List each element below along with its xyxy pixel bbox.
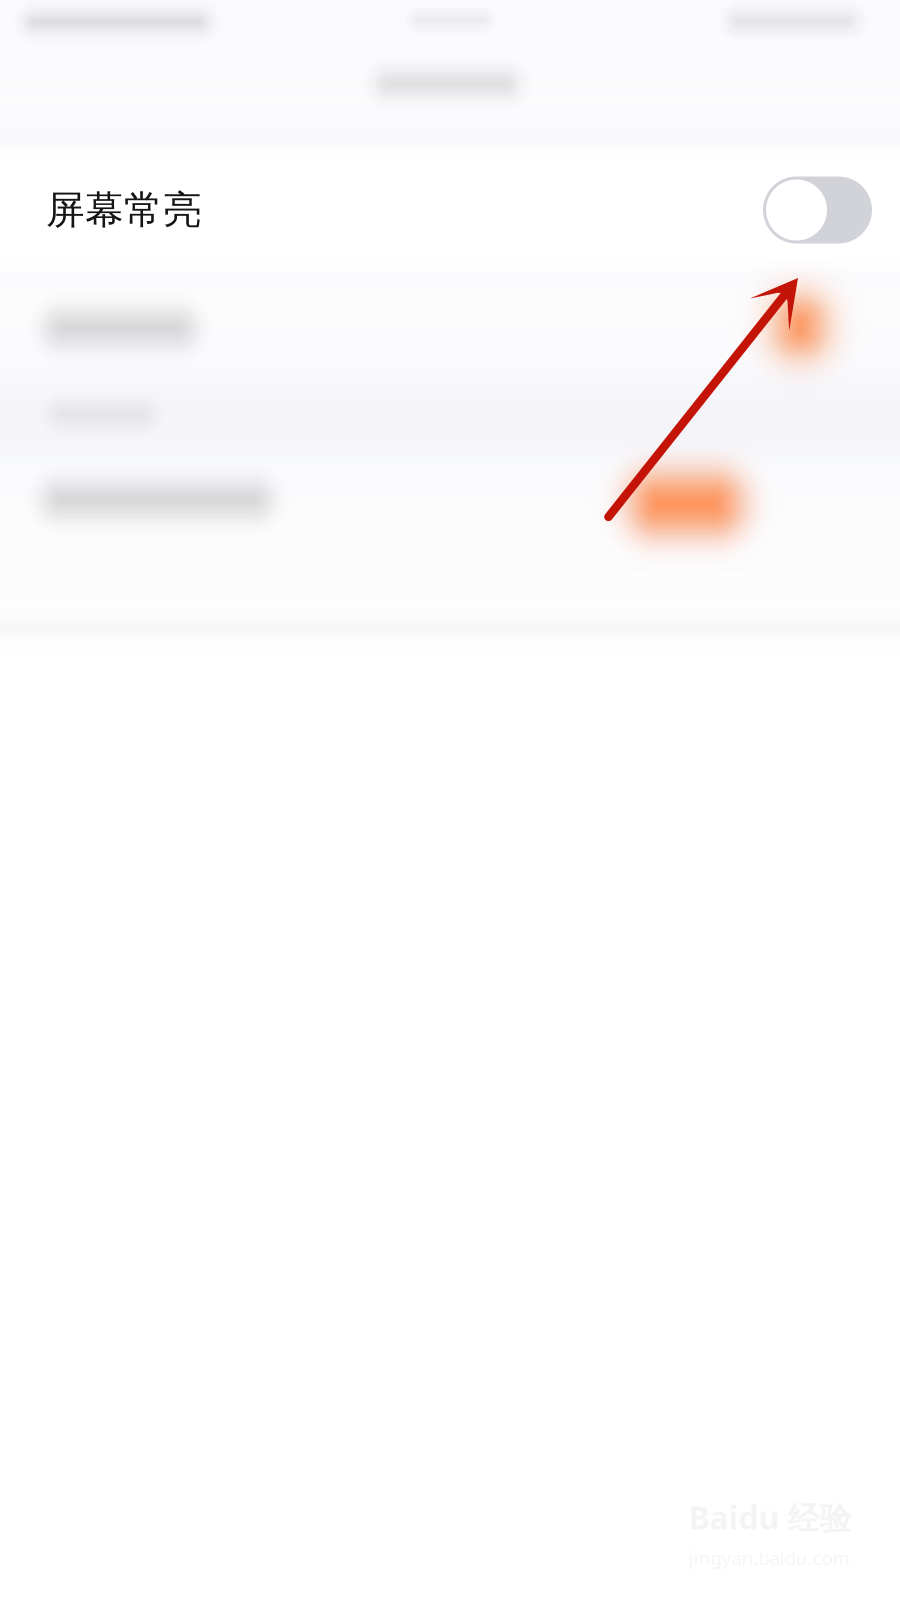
staticText: 屏幕常亮 [46, 186, 202, 234]
staticText: jingyan.baidu.com [688, 1545, 849, 1570]
button[interactable]: 屏幕常亮 [0, 161, 900, 258]
staticText: Baidu 经验 [688, 1496, 851, 1538]
